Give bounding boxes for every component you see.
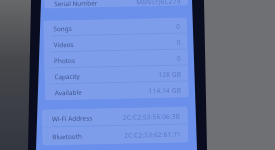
staticText: 128 GB [158, 70, 181, 79]
staticText: 0 [176, 22, 180, 31]
staticText: 2C:C2:53:62:81:71 [124, 130, 181, 140]
staticText: Wi-Fi Address [52, 113, 93, 123]
staticText: 0 [176, 38, 181, 47]
staticText: 114.14 GB [149, 86, 182, 95]
button[interactable]: Photos [44, 49, 188, 68]
staticText: 0 [177, 54, 181, 63]
button[interactable]: Bluetooth [42, 124, 188, 146]
staticText: Capacity [54, 72, 80, 81]
staticText: Serial Number [54, 0, 98, 8]
button[interactable]: Wi-Fi Address [42, 106, 188, 128]
staticText: Bluetooth [52, 132, 82, 141]
button[interactable]: Serial Number [44, 0, 188, 9]
staticText: 2C:C2:53:56:06:3B [123, 112, 181, 122]
staticText: Songs [53, 24, 72, 33]
button[interactable]: Videos [43, 33, 188, 52]
staticText: Photos [54, 56, 75, 65]
button[interactable]: Capacity [44, 65, 188, 84]
staticText: M6N51J6CZ79 [136, 0, 181, 7]
staticText: Videos [54, 40, 74, 49]
button[interactable]: Available [44, 81, 189, 100]
button[interactable]: Songs [43, 17, 187, 36]
staticText: Available [55, 88, 82, 97]
